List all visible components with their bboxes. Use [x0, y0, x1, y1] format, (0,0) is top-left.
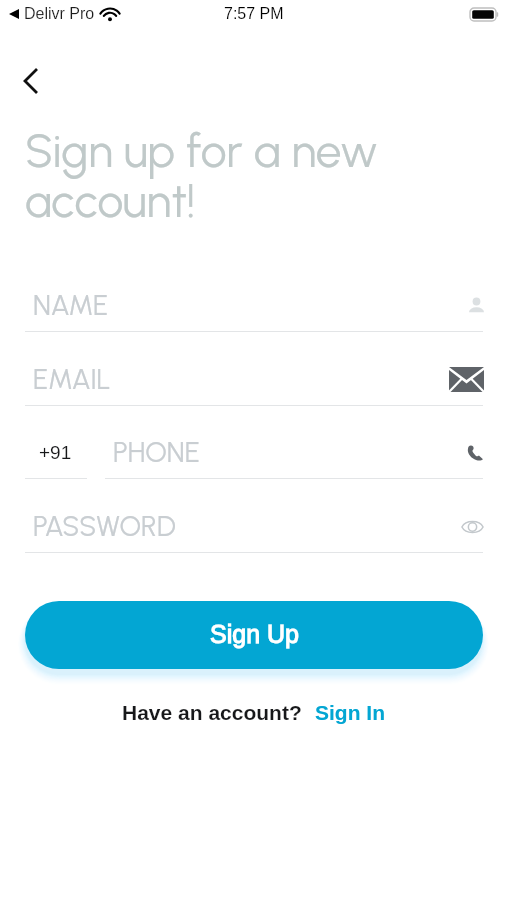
- button[interactable]: PHONE: [105, 430, 483, 479]
- staticText: Delivr Pro: [24, 5, 95, 23]
- button[interactable]: NAME: [25, 283, 483, 332]
- button[interactable]: PASSWORD: [25, 504, 483, 553]
- button[interactable]: Sign In: [315, 701, 385, 724]
- button[interactable]: Sign Up: [25, 601, 483, 669]
- staticText: PASSWORD: [33, 509, 176, 543]
- button[interactable]: +91: [25, 430, 87, 479]
- staticText: EMAIL: [33, 362, 111, 396]
- staticText: +91: [39, 442, 72, 463]
- staticText: Sign In: [315, 701, 385, 724]
- staticText: Have an account?: [122, 701, 302, 724]
- button[interactable]: Back: [10, 58, 56, 104]
- other: Show password: [461, 519, 484, 535]
- button[interactable]: EMAIL: [25, 357, 483, 406]
- other: Email: [449, 367, 484, 392]
- staticText: Sign Up: [210, 620, 299, 648]
- staticText: Sign up for a new account!: [25, 123, 378, 228]
- staticText: 7:57 PM: [224, 5, 284, 23]
- other: Phone: [467, 444, 484, 461]
- staticText: PHONE: [113, 435, 200, 469]
- staticText: NAME: [33, 288, 108, 322]
- other: Name: [469, 297, 484, 312]
